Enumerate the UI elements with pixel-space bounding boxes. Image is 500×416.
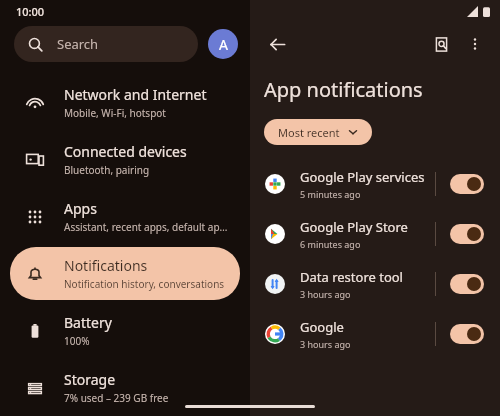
staticText: Google (300, 318, 344, 336)
button[interactable]: More options (460, 29, 490, 59)
staticText: 3 hours ago (300, 288, 351, 300)
staticText: 3 hours ago (300, 338, 351, 350)
button[interactable]: Toggle Google Play Store notifications (450, 224, 484, 244)
staticText: Google Play Store (300, 218, 408, 236)
button[interactable]: Network and Internet (10, 76, 240, 129)
staticText: 5 minutes ago (300, 188, 361, 200)
staticText: Most recent (278, 125, 340, 140)
staticText: A (219, 35, 228, 54)
button[interactable]: Google Play Store (250, 209, 500, 259)
staticText: Network and Internet (64, 85, 207, 104)
button[interactable]: Back (260, 27, 294, 61)
button[interactable]: Search (14, 26, 198, 62)
staticText: Bluetooth, pairing (64, 163, 150, 177)
button[interactable]: Toggle Google notifications (450, 324, 484, 344)
button[interactable]: Most recent (264, 119, 372, 145)
button[interactable]: Toggle Google Play services notification… (450, 174, 484, 194)
button[interactable]: Google (250, 309, 500, 359)
staticText: Google Play services (300, 168, 425, 186)
button[interactable]: Storage (10, 361, 240, 414)
staticText: App notifications (264, 76, 423, 103)
staticText: Assistant, recent apps, default apps (64, 220, 228, 234)
button[interactable]: Data restore tool (250, 259, 500, 309)
staticText: Notifications (64, 256, 148, 275)
staticText: 10:00 (16, 4, 45, 19)
staticText: Data restore tool (300, 268, 403, 286)
button[interactable]: Toggle Data restore tool notifications (450, 274, 484, 294)
staticText: Apps (64, 199, 97, 218)
staticText: Mobile, Wi-Fi, hotspot (64, 106, 166, 120)
staticText: Search (57, 35, 99, 53)
button[interactable]: Account (208, 29, 238, 59)
button[interactable]: Apps (10, 190, 240, 243)
staticText: Battery (64, 313, 112, 332)
button[interactable]: Search in page (426, 29, 456, 59)
staticText: Storage (64, 370, 116, 389)
staticText: 6 minutes ago (300, 238, 361, 250)
button[interactable]: Google Play services (250, 159, 500, 209)
button[interactable]: Notifications (10, 247, 240, 300)
staticText: 100% (64, 334, 90, 348)
button[interactable]: Connected devices (10, 133, 240, 186)
staticText: Notification history, conversations (64, 277, 225, 291)
button[interactable]: Battery (10, 304, 240, 357)
staticText: Connected devices (64, 142, 187, 161)
staticText: 7% used – 239 GB free (64, 391, 169, 405)
